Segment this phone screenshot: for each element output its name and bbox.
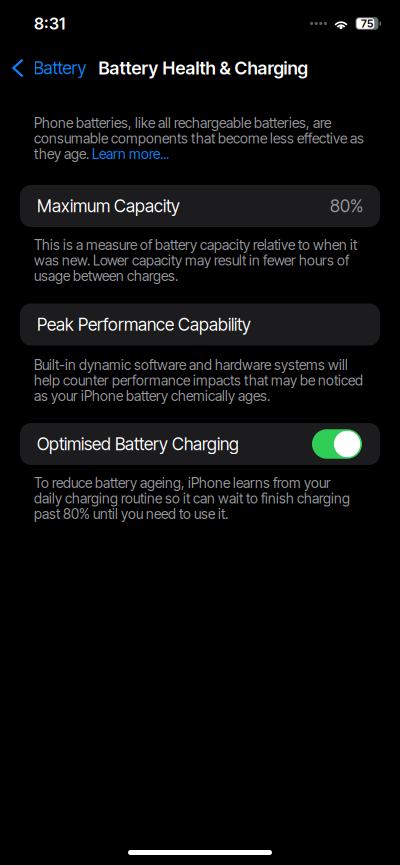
button[interactable]: Peak Performance Capability xyxy=(20,303,380,345)
button[interactable]: Optimised Battery Charging xyxy=(20,423,380,465)
staticText: Battery xyxy=(33,57,86,78)
staticText: 80% xyxy=(330,195,363,216)
staticText: This is a measure of battery capacity re… xyxy=(34,237,357,284)
staticText: To reduce battery ageing, iPhone learns … xyxy=(34,475,350,522)
button[interactable]: Maximum Capacity xyxy=(20,185,380,227)
staticText: Optimised Battery Charging xyxy=(37,433,239,454)
staticText: 8:31 xyxy=(34,14,65,33)
staticText: Phone batteries, like all rechargeable b… xyxy=(34,115,364,162)
staticText: Battery Health & Charging xyxy=(98,57,307,79)
staticText: Built-in dynamic software and hardware s… xyxy=(34,357,363,404)
staticText: Peak Performance Capability xyxy=(37,314,251,335)
staticText: Maximum Capacity xyxy=(37,195,180,216)
button[interactable]: Battery xyxy=(0,47,94,89)
staticText: 75 xyxy=(361,17,373,30)
